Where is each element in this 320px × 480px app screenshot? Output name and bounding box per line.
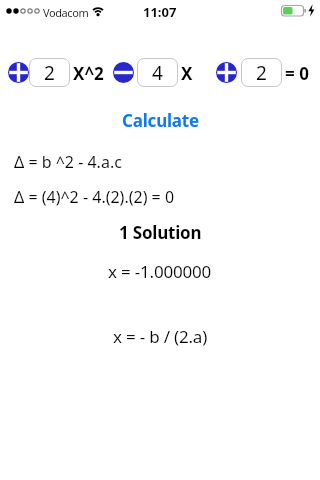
staticText: Vodacom [43, 5, 89, 20]
staticText: x = - b / (2.a) [113, 325, 208, 348]
button[interactable]: 2 [241, 58, 282, 87]
button[interactable]: Calculate [122, 109, 199, 132]
staticText: 4 [152, 60, 163, 86]
staticText: 2 [256, 60, 267, 86]
staticText: Δ = (4)^2 - 4.(2).(2) = 0 [14, 186, 175, 208]
staticText: X [181, 62, 193, 85]
staticText: = 0 [285, 62, 309, 85]
button[interactable]: 2 [29, 58, 70, 87]
staticText: 1 Solution [119, 221, 202, 244]
staticText: x = -1.000000 [108, 260, 212, 283]
staticText: 11:07 [143, 3, 177, 21]
staticText: 2 [44, 60, 55, 86]
button[interactable] [216, 62, 237, 83]
staticText: Δ = b ^2 - 4.a.c [14, 151, 122, 173]
button[interactable]: 4 [137, 58, 178, 87]
staticText: X^2 [73, 62, 104, 85]
button[interactable] [8, 62, 29, 83]
button[interactable] [113, 62, 134, 83]
